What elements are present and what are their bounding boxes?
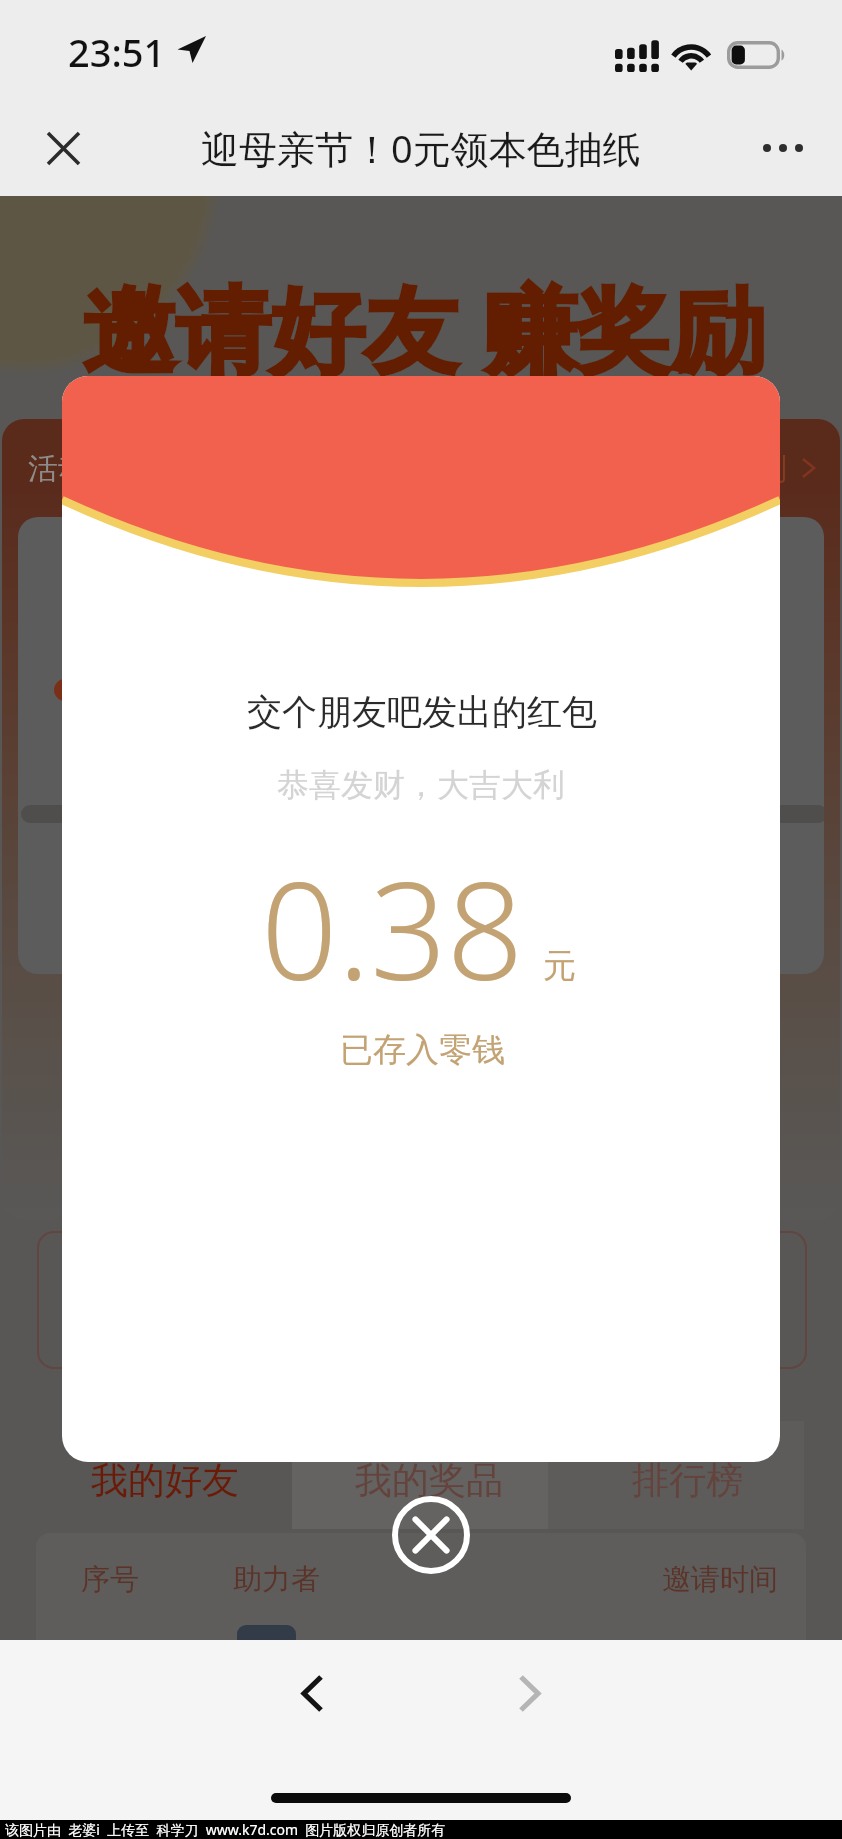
staticText: 恭喜发财，大吉大利 bbox=[277, 765, 565, 805]
staticText: 邀请好友 赚奖励 bbox=[82, 264, 765, 392]
button[interactable]: More options bbox=[748, 113, 818, 183]
staticText: 我的奖品 bbox=[355, 1457, 503, 1504]
staticText: 我的好友 bbox=[91, 1457, 239, 1504]
staticText: 交个朋友吧发出的红包 bbox=[247, 690, 597, 734]
staticText: 排行榜 bbox=[632, 1457, 743, 1504]
staticText: 迎母亲节！0元领本色抽纸 bbox=[201, 122, 641, 174]
staticText: 活动规则 bbox=[28, 450, 148, 488]
staticText: 序号 bbox=[81, 1561, 139, 1598]
staticText: 已存入零钱 bbox=[340, 1029, 505, 1071]
button[interactable]: Back bbox=[282, 1663, 342, 1723]
staticText: 该图片由 老婆i 上传至 科学刀 www.k7d.com 图片版权归原创者所有 bbox=[5, 1820, 446, 1839]
button[interactable]: Close red packet bbox=[392, 1496, 470, 1574]
staticText: 23:51 bbox=[68, 26, 166, 78]
staticText: 规则 bbox=[727, 450, 787, 488]
staticText: 邀请时间 bbox=[662, 1561, 778, 1598]
staticText: 助力者 bbox=[233, 1561, 320, 1598]
staticText: 元 bbox=[543, 945, 576, 987]
button[interactable]: Forward bbox=[499, 1663, 559, 1723]
staticText: 0.38 bbox=[261, 837, 524, 1020]
button[interactable]: Close bbox=[28, 113, 98, 183]
